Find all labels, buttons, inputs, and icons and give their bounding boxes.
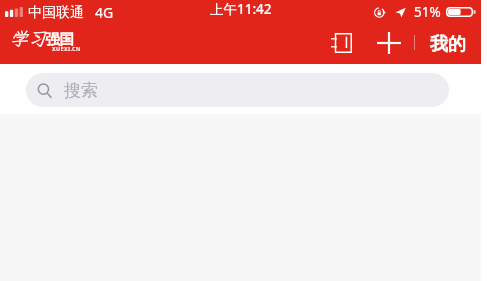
staticText: 我的 bbox=[430, 33, 466, 56]
button[interactable]: 我的 bbox=[415, 26, 479, 59]
staticText: 上午11:42 bbox=[210, 0, 272, 18]
button[interactable]: 搜索 bbox=[26, 73, 449, 107]
button[interactable]: Add bbox=[370, 27, 408, 59]
staticText: 学习 bbox=[10, 26, 46, 50]
staticText: 中国联通 bbox=[28, 4, 84, 22]
staticText: 强国 bbox=[45, 30, 74, 48]
staticText: 搜索 bbox=[64, 80, 98, 101]
staticText: 51% bbox=[414, 3, 441, 21]
staticText: 4G bbox=[95, 3, 114, 22]
staticText: XUEXI.CN bbox=[52, 45, 81, 52]
button[interactable]: Notebook bbox=[323, 27, 360, 59]
